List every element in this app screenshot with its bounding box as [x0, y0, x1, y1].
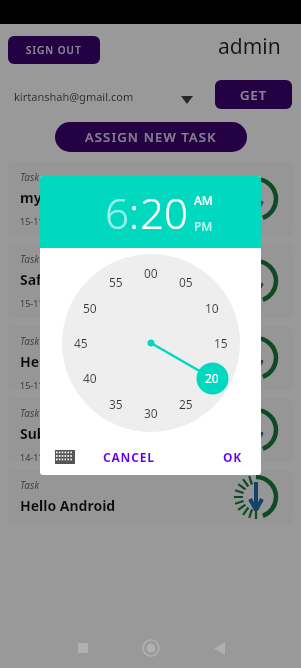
staticText: 15	[214, 335, 228, 351]
button[interactable]: Back	[202, 631, 236, 665]
staticText: 30	[144, 405, 158, 421]
button[interactable]: ASSIGN NEW TASK	[55, 122, 247, 152]
staticText: 14-11-2022T0:0:00	[20, 451, 98, 462]
staticText: 15-11-2022T0:0:00	[20, 215, 98, 227]
button[interactable]: 20	[140, 184, 188, 241]
staticText: 45	[74, 335, 88, 351]
staticText: 15-11-2022T0:0:00	[20, 379, 98, 390]
button[interactable]: SIGN OUT	[8, 36, 100, 64]
button[interactable]: Task	[8, 398, 293, 462]
staticText: Task	[20, 478, 40, 492]
button[interactable]: Home	[134, 631, 168, 665]
staticText: Hello	[20, 352, 57, 371]
staticText: 50	[83, 300, 97, 316]
staticText: 16-11-2022T18:30:00	[108, 215, 196, 227]
button[interactable]: Task	[8, 326, 293, 390]
staticText: SIGN OUT	[26, 43, 82, 57]
staticText: Task	[20, 406, 40, 420]
staticText: 35	[109, 396, 123, 412]
staticText: 10	[205, 300, 219, 316]
staticText: Task	[20, 334, 40, 348]
staticText: OK	[223, 449, 243, 465]
staticText: Submit Android Assig…	[20, 424, 181, 443]
button[interactable]: PM	[194, 218, 213, 234]
button[interactable]: Task	[8, 470, 293, 524]
staticText: 40	[83, 370, 97, 386]
staticText: GET	[240, 86, 267, 104]
button[interactable]: Task	[8, 162, 293, 236]
button[interactable]: OK	[223, 449, 243, 465]
staticText: 25	[179, 396, 193, 412]
button[interactable]: Switch to text input	[54, 448, 76, 466]
button[interactable]: CANCEL	[103, 449, 155, 465]
staticText: 00	[144, 265, 158, 281]
staticText: 20	[205, 370, 219, 386]
button[interactable]: 6	[105, 184, 129, 241]
staticText: Task	[20, 252, 40, 266]
staticText: :	[129, 184, 140, 241]
staticText: kirtanshah@gmail.com	[14, 89, 134, 104]
staticText: 15-11-2022T0:0:00	[20, 297, 98, 309]
staticText: ASSIGN NEW TASK	[85, 128, 217, 146]
button[interactable]: AM	[194, 192, 213, 208]
button[interactable]: Recents	[66, 631, 100, 665]
staticText: 05	[179, 274, 193, 290]
staticText: admin	[218, 32, 281, 61]
staticText: Hello Android	[20, 496, 116, 515]
staticText: my task	[20, 188, 76, 207]
staticText: 55	[109, 274, 123, 290]
staticText: Safety first	[20, 270, 97, 289]
button[interactable]: GET	[215, 80, 292, 109]
staticText: Task	[20, 170, 40, 184]
button[interactable]: Task	[8, 244, 293, 318]
staticText: CANCEL	[103, 449, 155, 465]
staticText: 16-11-2022T18:30:00	[108, 451, 196, 462]
